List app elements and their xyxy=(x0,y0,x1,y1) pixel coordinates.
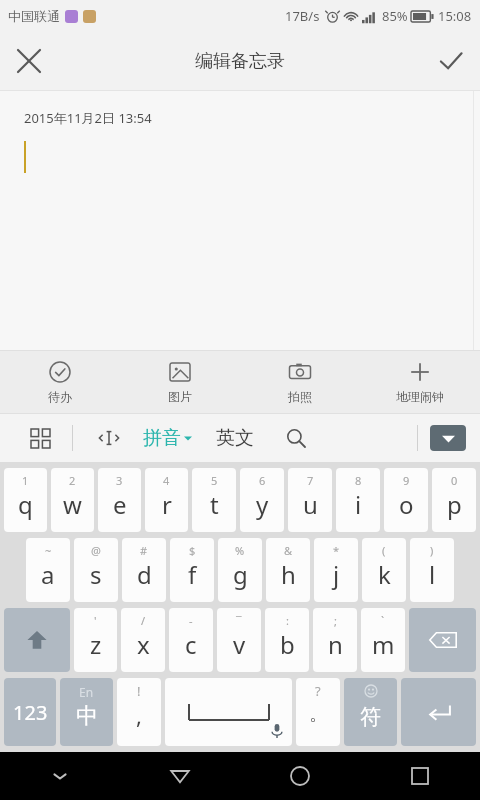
staticText: 0 xyxy=(451,473,458,488)
staticText: n xyxy=(328,628,343,661)
button[interactable]: 3 xyxy=(98,468,141,532)
staticText: ~ xyxy=(45,543,52,558)
button[interactable]: 符 xyxy=(344,678,397,746)
button[interactable]: Move cursor xyxy=(89,418,129,458)
button[interactable]: * xyxy=(314,538,358,602)
staticText: o xyxy=(399,488,414,521)
button[interactable]: ? xyxy=(296,678,340,746)
staticText: 9 xyxy=(403,473,410,488)
button[interactable]: 英文 xyxy=(216,426,254,450)
staticText: r xyxy=(162,488,172,521)
staticText: ? xyxy=(315,682,321,700)
staticText: a xyxy=(41,558,55,591)
button[interactable]: Close xyxy=(0,32,58,90)
button[interactable]: 5 xyxy=(192,468,236,532)
button[interactable]: 图片 xyxy=(120,351,240,413)
button[interactable]: Recents xyxy=(360,752,480,800)
button[interactable]: Keyboard layouts xyxy=(20,418,60,458)
staticText: q xyxy=(18,488,33,521)
staticText: k xyxy=(378,558,391,591)
staticText: ( xyxy=(382,543,386,558)
button[interactable]: 9 xyxy=(384,468,428,532)
button[interactable]: Search xyxy=(276,418,316,458)
button[interactable]: - xyxy=(169,608,213,672)
button[interactable]: 0 xyxy=(432,468,476,532)
button[interactable]: Backspace xyxy=(409,608,476,672)
staticText: * xyxy=(333,543,340,558)
button[interactable]: Enter xyxy=(401,678,476,746)
staticText: ` xyxy=(381,613,385,628)
button[interactable]: Shift xyxy=(4,608,70,672)
staticText: 符 xyxy=(360,704,381,730)
staticText: i xyxy=(355,488,362,521)
button[interactable]: & xyxy=(266,538,310,602)
staticText: 拍照 xyxy=(288,389,312,404)
button[interactable]: 地理闹钟 xyxy=(360,351,480,413)
staticText: En xyxy=(79,684,94,700)
staticText: f xyxy=(188,558,197,591)
staticText: 5 xyxy=(211,473,218,488)
staticText: x xyxy=(137,628,150,661)
staticText: c xyxy=(185,628,197,661)
button[interactable]: En xyxy=(60,678,113,746)
staticText: , xyxy=(136,700,142,730)
button[interactable]: / xyxy=(121,608,165,672)
button[interactable]: ) xyxy=(410,538,454,602)
button[interactable]: 6 xyxy=(240,468,284,532)
staticText: g xyxy=(233,558,248,591)
button[interactable]: 7 xyxy=(288,468,332,532)
button[interactable]: ! xyxy=(117,678,161,746)
staticText: b xyxy=(280,628,295,661)
staticText: 123 xyxy=(13,699,48,726)
staticText: 英文 xyxy=(216,426,254,450)
staticText: 3 xyxy=(116,473,123,488)
staticText: z xyxy=(90,628,102,661)
staticText: - xyxy=(189,613,193,628)
staticText: 拼音 xyxy=(143,426,181,450)
button[interactable]: 2 xyxy=(51,468,94,532)
button[interactable]: ; xyxy=(313,608,357,672)
staticText: 中国联通 xyxy=(8,8,60,24)
button[interactable]: ~ xyxy=(26,538,70,602)
staticText: @ xyxy=(91,543,101,558)
staticText: 图片 xyxy=(168,389,192,404)
button[interactable]: Hide keyboard xyxy=(430,425,466,451)
staticText: t xyxy=(210,488,219,521)
button[interactable]: 4 xyxy=(145,468,188,532)
button[interactable]: 123 xyxy=(4,678,56,746)
button[interactable]: Home xyxy=(240,752,360,800)
button[interactable]: 8 xyxy=(336,468,380,532)
button[interactable]: 1 xyxy=(4,468,47,532)
button[interactable]: ¯ xyxy=(217,608,261,672)
button[interactable]: 拍照 xyxy=(240,351,360,413)
button[interactable]: % xyxy=(218,538,262,602)
staticText: 地理闹钟 xyxy=(396,389,444,404)
button[interactable]: $ xyxy=(170,538,214,602)
staticText: ! xyxy=(137,682,141,700)
staticText: % xyxy=(235,543,245,558)
button[interactable]: Hide keyboard xyxy=(0,752,120,800)
button[interactable]: @ xyxy=(74,538,118,602)
button[interactable]: ' xyxy=(74,608,117,672)
staticText: 2 xyxy=(69,473,76,488)
staticText: 编辑备忘录 xyxy=(195,50,285,73)
staticText: : xyxy=(286,613,289,628)
staticText: 2015年11月2日 13:54 xyxy=(24,109,152,127)
button[interactable]: 拼音 xyxy=(143,426,192,450)
button[interactable]: # xyxy=(122,538,166,602)
staticText: ¯ xyxy=(236,613,242,628)
button[interactable]: ( xyxy=(362,538,406,602)
button[interactable]: Back xyxy=(120,752,240,800)
staticText: s xyxy=(90,558,102,591)
staticText: 中 xyxy=(76,702,98,730)
staticText: e xyxy=(113,488,127,521)
staticText: 85% xyxy=(382,7,408,25)
staticText: 7 xyxy=(307,473,314,488)
button[interactable]: : xyxy=(265,608,309,672)
staticText: l xyxy=(429,558,436,591)
button[interactable]: 待办 xyxy=(0,351,120,413)
button[interactable]: Space xyxy=(165,678,292,746)
button[interactable]: Save xyxy=(422,32,480,90)
staticText: $ xyxy=(189,543,196,558)
button[interactable]: ` xyxy=(361,608,405,672)
